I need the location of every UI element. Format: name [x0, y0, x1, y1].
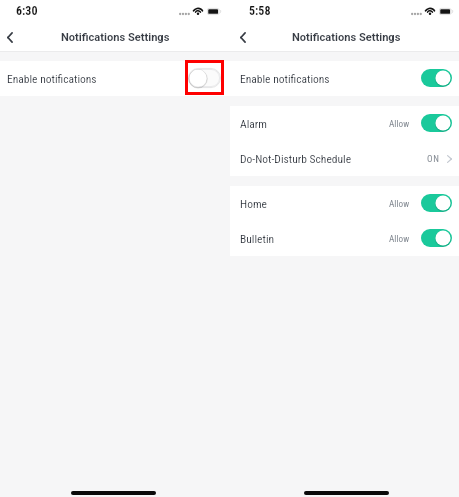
staticText: Home	[240, 197, 267, 210]
staticText: 5:58	[249, 4, 271, 18]
button[interactable]: Switch off	[189, 69, 220, 87]
button[interactable]: Bulletin	[230, 221, 459, 256]
staticText: Notifications Settings	[292, 31, 401, 44]
button[interactable]: Enable notifications	[0, 61, 230, 96]
button[interactable]: Home	[230, 186, 459, 221]
staticText: Bulletin	[240, 232, 275, 245]
button[interactable]: Switch on	[421, 229, 452, 247]
staticText: Alarm	[240, 117, 267, 130]
staticText: Allow	[389, 233, 410, 244]
staticText: Enable notifications	[7, 72, 97, 85]
button[interactable]: Switch on	[421, 114, 452, 132]
staticText: Allow	[389, 118, 410, 129]
staticText: Do-Not-Disturb Schedule	[240, 152, 352, 165]
button[interactable]: Switch on	[421, 69, 452, 87]
button[interactable]: Back	[0, 26, 20, 47]
staticText: Allow	[389, 198, 410, 209]
staticText: Enable notifications	[240, 72, 330, 85]
button[interactable]: Back	[232, 26, 253, 47]
staticText: Notifications Settings	[61, 31, 170, 44]
button[interactable]: Enable notifications	[230, 61, 459, 96]
button[interactable]: Do-Not-Disturb Schedule	[230, 141, 459, 176]
button[interactable]: Switch on	[421, 194, 452, 212]
button[interactable]: Alarm	[230, 106, 459, 141]
staticText: ON	[427, 153, 440, 164]
staticText: 6:30	[16, 4, 38, 18]
